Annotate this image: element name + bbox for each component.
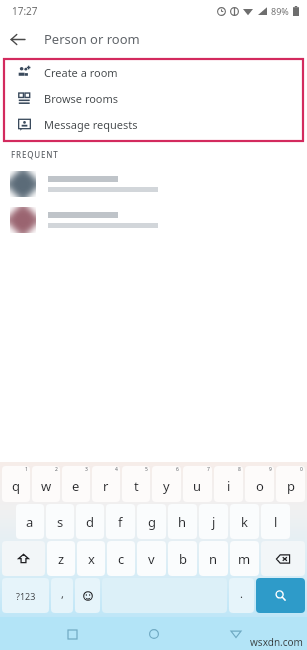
staticText: Message requests [44,117,138,132]
button[interactable]: Search [256,578,305,613]
button[interactable] [0,203,307,236]
staticText: 1 [25,466,28,473]
staticText: q [12,477,20,495]
button[interactable]: v [137,541,166,576]
staticText: , [61,586,64,601]
staticText: 2 [55,466,58,473]
button[interactable]: 9 [245,466,274,502]
button[interactable]: x [77,541,105,576]
staticText: y [163,477,170,495]
staticText: l [274,513,278,531]
button[interactable]: Back [223,621,249,647]
button[interactable]: b [168,541,197,576]
staticText: z [58,550,65,568]
button[interactable]: 8 [214,466,243,502]
button[interactable]: 4 [92,466,120,502]
button[interactable]: k [230,504,259,539]
staticText: m [238,550,251,568]
button[interactable]: d [76,504,104,539]
button[interactable]: Home [141,621,167,647]
staticText: f [118,513,123,531]
staticText: 17:27 [12,4,38,18]
staticText: Create a room [44,65,118,80]
button[interactable]: s [46,504,74,539]
staticText: 0 [300,466,303,473]
staticText: j [212,513,216,531]
button[interactable]: 2 [32,466,60,502]
staticText: x [88,550,95,568]
button[interactable]: g [137,504,166,539]
button[interactable]: m [230,541,259,576]
button[interactable]: 3 [62,466,90,502]
staticText: 9 [269,466,272,473]
staticText: t [134,477,139,495]
button[interactable] [0,167,307,200]
button[interactable]: 5 [122,466,150,502]
staticText: 6 [176,466,179,473]
staticText: d [86,513,94,531]
staticText: ?123 [16,590,36,602]
button[interactable]: , [51,578,73,613]
staticText: r [103,477,109,495]
staticText: s [57,513,64,531]
staticText: Person or room [44,30,140,48]
staticText: a [26,513,34,531]
staticText: 89% [271,5,289,17]
staticText: o [256,477,264,495]
button[interactable]: . [229,578,254,613]
button[interactable]: h [168,504,197,539]
button[interactable]: c [107,541,135,576]
staticText: h [178,513,187,531]
staticText: FREQUENT [11,149,59,160]
staticText: . [240,586,243,601]
staticText: 5 [145,466,148,473]
staticText: u [193,477,202,495]
button[interactable]: j [199,504,228,539]
staticText: 8 [238,466,241,473]
button[interactable]: 1 [2,466,30,502]
button[interactable]: Browse rooms [4,85,303,111]
button[interactable]: f [106,504,135,539]
staticText: c [118,550,125,568]
staticText: v [148,550,155,568]
button[interactable]: 0 [276,466,305,502]
staticText: wsxdn.com [250,635,303,649]
staticText: w [41,477,52,495]
staticText: e [72,477,80,495]
button[interactable]: Create a room [4,59,303,85]
staticText: 3 [85,466,88,473]
staticText: n [209,550,218,568]
button[interactable]: ?123 [2,578,49,613]
staticText: Browse rooms [44,91,119,106]
button[interactable]: Emoji [75,578,100,613]
staticText: g [148,513,156,531]
staticText: k [241,513,248,531]
button[interactable]: l [261,504,290,539]
button[interactable]: 7 [183,466,212,502]
button[interactable]: n [199,541,228,576]
staticText: b [179,550,187,568]
staticText: 7 [207,466,210,473]
button[interactable]: Recents [59,621,85,647]
staticText: i [227,477,231,495]
staticText: 4 [115,466,118,473]
button[interactable]: Back [0,22,34,56]
staticText: p [287,477,295,495]
button[interactable]: Backspace [261,541,305,576]
button[interactable]: 6 [152,466,181,502]
button[interactable]: a [16,504,44,539]
button[interactable]: z [47,541,75,576]
button[interactable]: Message requests [4,111,303,137]
button[interactable]: Shift [2,541,45,576]
